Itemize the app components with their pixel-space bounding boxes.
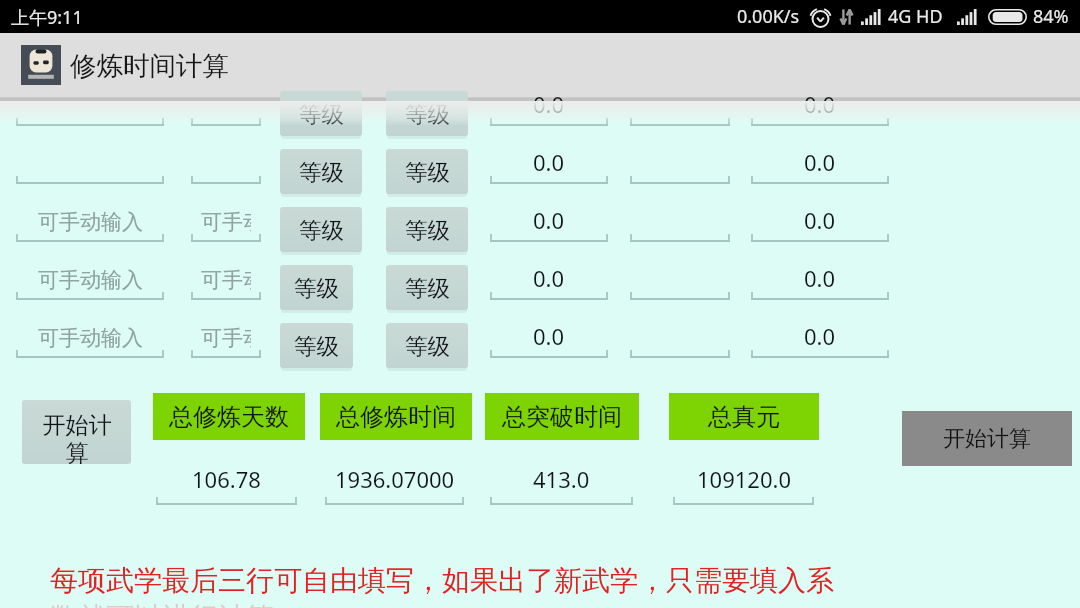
button[interactable] xyxy=(191,143,261,185)
button[interactable]: 0.0 xyxy=(751,259,889,301)
button[interactable]: 等级 xyxy=(386,91,468,136)
staticText: 等级 xyxy=(299,216,344,244)
staticText: 0.0 xyxy=(533,147,565,175)
staticText: 0.0 xyxy=(804,263,836,291)
button[interactable]: 等级 xyxy=(280,91,362,136)
staticText: 0.0 xyxy=(804,321,836,349)
staticText: 等级 xyxy=(405,158,450,186)
staticText: 总突破时间 xyxy=(502,402,622,432)
button[interactable]: 0.0 xyxy=(751,317,889,359)
staticText: 0.00K/s xyxy=(737,4,800,29)
button[interactable]: 等级 xyxy=(386,323,468,368)
staticText: 修炼时间计算 xyxy=(70,49,229,82)
staticText: 等级 xyxy=(405,100,450,128)
button[interactable]: 可手动输入 xyxy=(191,259,261,301)
staticText: 开始计算 xyxy=(943,425,1031,453)
button[interactable]: 106.78 xyxy=(156,464,297,506)
button[interactable]: 可手动输入 xyxy=(191,201,261,243)
button[interactable] xyxy=(630,259,730,301)
staticText: 等级 xyxy=(405,274,450,302)
staticText: 可手动输入 xyxy=(201,325,251,349)
staticText: 总修炼时间 xyxy=(336,402,456,432)
button[interactable]: 总修炼天数 xyxy=(153,393,305,440)
button[interactable]: 等级 xyxy=(280,265,353,310)
staticText: 开始计算 xyxy=(41,411,113,464)
button[interactable] xyxy=(630,317,730,359)
button[interactable]: 0.0 xyxy=(751,143,889,185)
staticText: 等级 xyxy=(405,332,450,360)
button[interactable]: 0.0 xyxy=(751,201,889,243)
staticText: 等级 xyxy=(299,100,344,128)
button[interactable]: 等级 xyxy=(280,207,362,252)
button[interactable]: 0.0 xyxy=(490,143,608,185)
button[interactable]: 等级 xyxy=(280,149,362,194)
button[interactable]: 开始计算 xyxy=(22,400,131,464)
staticText: 84% xyxy=(1033,4,1069,29)
button[interactable]: 可手动输入 xyxy=(16,201,164,243)
button[interactable] xyxy=(16,143,164,185)
staticText: 可手动输入 xyxy=(201,267,251,291)
staticText: 总修炼天数 xyxy=(169,402,289,432)
staticText: 0.0 xyxy=(533,89,565,117)
staticText: 109120.0 xyxy=(697,464,791,494)
staticText: 数就可以进行计算 xyxy=(50,600,274,608)
button[interactable]: 0.0 xyxy=(490,201,608,243)
button[interactable]: 等级 xyxy=(386,207,468,252)
staticText: 0.0 xyxy=(804,205,836,233)
button[interactable]: 开始计算 xyxy=(902,411,1072,466)
button[interactable] xyxy=(630,85,730,127)
staticText: 106.78 xyxy=(192,464,261,494)
button[interactable]: 等级 xyxy=(386,149,468,194)
staticText: 0.0 xyxy=(533,321,565,349)
button[interactable]: 总修炼时间 xyxy=(320,393,472,440)
staticText: 0.0 xyxy=(804,89,836,117)
staticText: 可手动输入 xyxy=(38,325,143,349)
staticText: 等级 xyxy=(405,216,450,244)
button[interactable]: 0.0 xyxy=(490,317,608,359)
staticText: 可手动输入 xyxy=(38,267,143,291)
button[interactable]: 可手动输入 xyxy=(16,259,164,301)
staticText: 等级 xyxy=(299,158,344,186)
staticText: 0.0 xyxy=(533,205,565,233)
button[interactable]: 可手动输入 xyxy=(16,317,164,359)
button[interactable]: 0.0 xyxy=(490,259,608,301)
staticText: 4G HD xyxy=(888,4,943,29)
other: App icon xyxy=(21,45,61,85)
button[interactable]: 413.0 xyxy=(490,464,633,506)
button[interactable]: 1936.07000 xyxy=(325,464,464,506)
staticText: 上午9:11 xyxy=(11,5,83,30)
button[interactable]: 等级 xyxy=(386,265,468,310)
button[interactable] xyxy=(16,85,164,127)
staticText: 0.0 xyxy=(533,263,565,291)
staticText: 总真元 xyxy=(708,402,780,432)
staticText: 等级 xyxy=(294,274,339,302)
button[interactable]: 总突破时间 xyxy=(485,393,639,440)
staticText: 等级 xyxy=(294,332,339,360)
button[interactable] xyxy=(191,85,261,127)
button[interactable]: 总真元 xyxy=(669,393,819,440)
button[interactable] xyxy=(630,143,730,185)
button[interactable] xyxy=(630,201,730,243)
staticText: 1936.07000 xyxy=(335,464,455,494)
staticText: 可手动输入 xyxy=(201,209,251,233)
button[interactable]: 可手动输入 xyxy=(191,317,261,359)
button[interactable]: 0.0 xyxy=(490,85,608,127)
staticText: 每项武学最后三行可自由填写，如果出了新武学，只需要填入系 xyxy=(50,563,834,598)
button[interactable]: 109120.0 xyxy=(673,464,814,506)
staticText: 413.0 xyxy=(533,464,590,494)
button[interactable]: 等级 xyxy=(280,323,353,368)
staticText: 0.0 xyxy=(804,147,836,175)
button[interactable]: 0.0 xyxy=(751,85,889,127)
staticText: 可手动输入 xyxy=(38,209,143,233)
